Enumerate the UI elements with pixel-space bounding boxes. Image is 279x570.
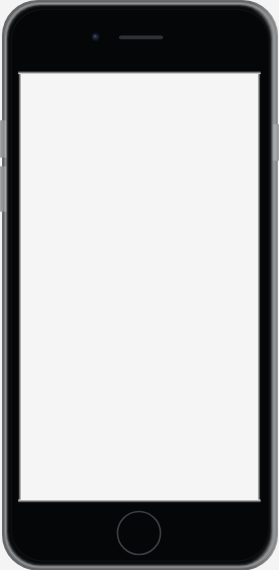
button[interactable]: Phone mockup xyxy=(0,0,279,570)
